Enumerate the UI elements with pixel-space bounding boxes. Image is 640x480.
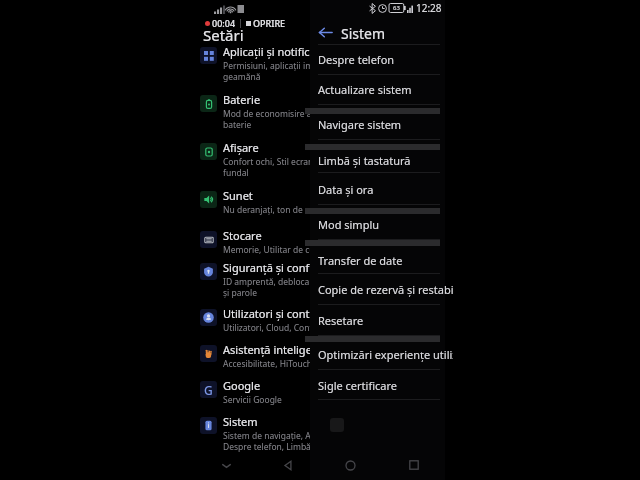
staticText: Stocare xyxy=(223,228,262,243)
staticText: 63 xyxy=(393,4,400,12)
button[interactable]: Aplicații recente xyxy=(382,450,445,480)
button[interactable]: Navigare sistem xyxy=(310,113,445,139)
staticText: Data și ora xyxy=(318,182,374,197)
staticText: 12:28 xyxy=(416,1,442,15)
button[interactable]: Optimizări experiențe utilizator xyxy=(310,343,445,369)
button[interactable]: Transfer de date xyxy=(310,249,445,275)
staticText: Navigare sistem xyxy=(318,117,402,132)
staticText: Sistem de navigație, Actualizare softwar… xyxy=(223,430,389,452)
staticText: Siguranță și confidențialitate xyxy=(223,260,371,275)
staticText: Optimizări experiențe utilizator xyxy=(318,347,453,362)
staticText: Mod de economisire a energiei, utilizare… xyxy=(223,108,383,130)
button[interactable]: Înapoi xyxy=(257,450,319,480)
staticText: Resetare xyxy=(318,313,364,328)
button[interactable]: Asistență inteligentă xyxy=(195,342,445,370)
staticText: Setări xyxy=(203,25,244,45)
staticText: Confort ochi, Stil ecran de pornire, fun… xyxy=(223,156,360,178)
staticText: Sistem xyxy=(223,414,258,429)
button[interactable]: Utilizatori și conturi xyxy=(195,306,445,334)
staticText: Aplicații și notificări xyxy=(223,44,324,59)
staticText: Sunet xyxy=(223,188,253,203)
staticText: Mod simplu xyxy=(318,217,380,232)
staticText: Accesibilitate, HiTouch, Mișcări xyxy=(223,358,346,370)
button[interactable]: Resetare xyxy=(310,309,445,335)
button[interactable]: Siguranță și confidențialitate xyxy=(195,260,445,298)
staticText: Google xyxy=(223,378,261,393)
staticText: Nu deranjați, ton de apel, vibrare xyxy=(223,204,355,216)
button[interactable]: Sunet xyxy=(195,188,445,216)
button[interactable]: Acasă xyxy=(319,450,382,480)
staticText: Copie de rezervă și restabilire xyxy=(318,282,453,297)
staticText: Servicii Google xyxy=(223,394,282,406)
staticText: Asistență inteligentă xyxy=(223,342,329,357)
button[interactable]: Ascunde tastatura xyxy=(195,450,257,480)
staticText: Transfer de date xyxy=(318,253,403,268)
staticText: Memorie, Utilitar de curățare xyxy=(223,244,339,256)
button[interactable]: Baterie xyxy=(195,92,445,130)
staticText: Sigle certificare xyxy=(318,378,397,393)
button[interactable]: Copie de rezervă și restabilire xyxy=(310,278,445,304)
button[interactable]: Afișare xyxy=(195,140,445,178)
staticText: Sistem xyxy=(341,24,386,43)
button[interactable]: Înapoi xyxy=(314,21,336,43)
button[interactable]: Mod simplu xyxy=(310,213,445,239)
staticText: 00:04 xyxy=(212,17,236,29)
staticText: ID amprentă, deblocare facială, Blocare … xyxy=(223,276,380,298)
staticText: Baterie xyxy=(223,92,261,107)
staticText: Utilizatori și conturi xyxy=(223,306,324,321)
staticText: G xyxy=(204,382,213,398)
staticText: OPRIRE xyxy=(253,17,286,29)
button[interactable]: Limbă și tastatură xyxy=(310,149,445,175)
staticText: Utilizatori, Cloud, Conturi xyxy=(223,322,324,334)
button[interactable]: Sistem xyxy=(195,414,445,452)
staticText: Permisiuni, aplicații implicite, aplicaț… xyxy=(223,60,372,82)
button[interactable]: Data și ora xyxy=(310,178,445,204)
button[interactable]: Despre telefon xyxy=(310,48,445,74)
staticText: Limbă și tastatură xyxy=(318,153,411,168)
staticText: Afișare xyxy=(223,140,259,155)
button[interactable]: Aplicații și notificări xyxy=(195,44,445,82)
button[interactable]: Actualizare sistem xyxy=(310,78,445,104)
staticText: Actualizare sistem xyxy=(318,82,412,97)
button[interactable]: Sigle certificare xyxy=(310,374,445,400)
staticText: Despre telefon xyxy=(318,52,395,67)
button[interactable]: G xyxy=(195,378,445,406)
button[interactable]: Stocare xyxy=(195,228,445,256)
